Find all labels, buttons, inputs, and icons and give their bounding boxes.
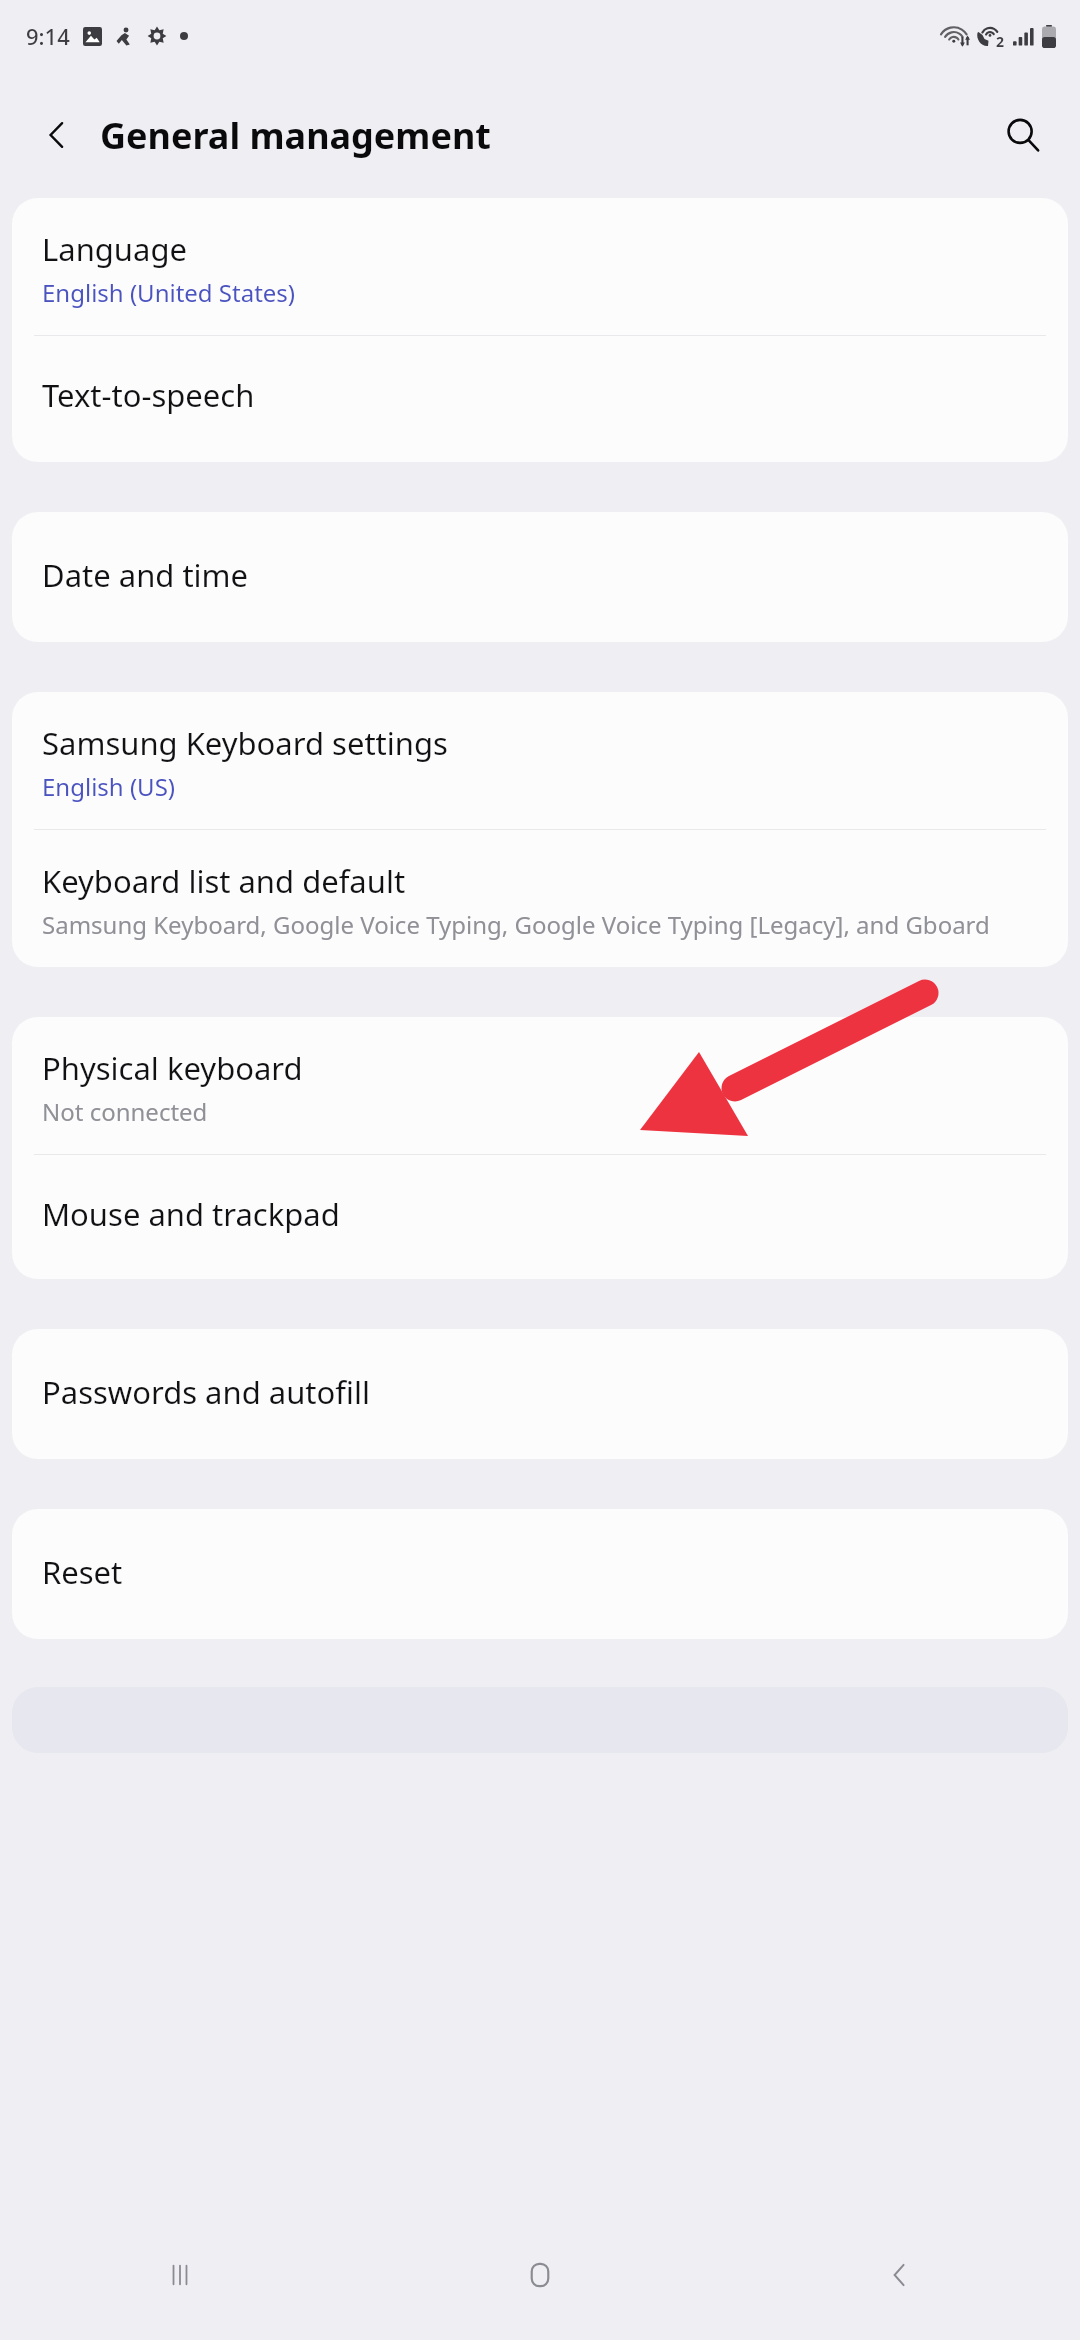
button[interactable]: Text-to-speech	[12, 336, 1068, 462]
button[interactable]: Language	[12, 198, 1068, 335]
staticText: Passwords and autofill	[42, 1371, 370, 1413]
button[interactable]: Physical keyboard	[12, 1017, 1068, 1154]
staticText: English (United States)	[42, 276, 296, 309]
staticText: Mouse and trackpad	[42, 1193, 340, 1235]
button[interactable]: Passwords and autofill	[12, 1329, 1068, 1459]
button[interactable]: Reset	[12, 1509, 1068, 1639]
button[interactable]: Samsung Keyboard settings	[12, 692, 1068, 829]
staticText: Date and time	[42, 554, 249, 596]
staticText: Reset	[42, 1551, 123, 1593]
staticText: Text-to-speech	[42, 374, 255, 416]
staticText: English (US)	[42, 770, 176, 803]
button[interactable]: Search	[988, 100, 1058, 170]
staticText: Language	[42, 228, 187, 270]
button[interactable]: Home	[360, 2210, 720, 2340]
button[interactable]: Back	[720, 2210, 1080, 2340]
staticText: Keyboard list and default	[42, 860, 406, 902]
button[interactable]: Back	[22, 100, 92, 170]
staticText: Samsung Keyboard, Google Voice Typing, G…	[42, 908, 990, 941]
staticText: Not connected	[42, 1095, 208, 1128]
staticText: 2	[996, 32, 1005, 51]
staticText: Samsung Keyboard settings	[42, 722, 448, 764]
button[interactable]: Mouse and trackpad	[12, 1155, 1068, 1279]
staticText: Physical keyboard	[42, 1047, 303, 1089]
staticText: General management	[100, 111, 491, 160]
button[interactable]: Keyboard list and default	[12, 830, 1068, 967]
button[interactable]: Recents	[0, 2210, 360, 2340]
button[interactable]: Date and time	[12, 512, 1068, 642]
staticText: 9:14	[26, 21, 70, 51]
